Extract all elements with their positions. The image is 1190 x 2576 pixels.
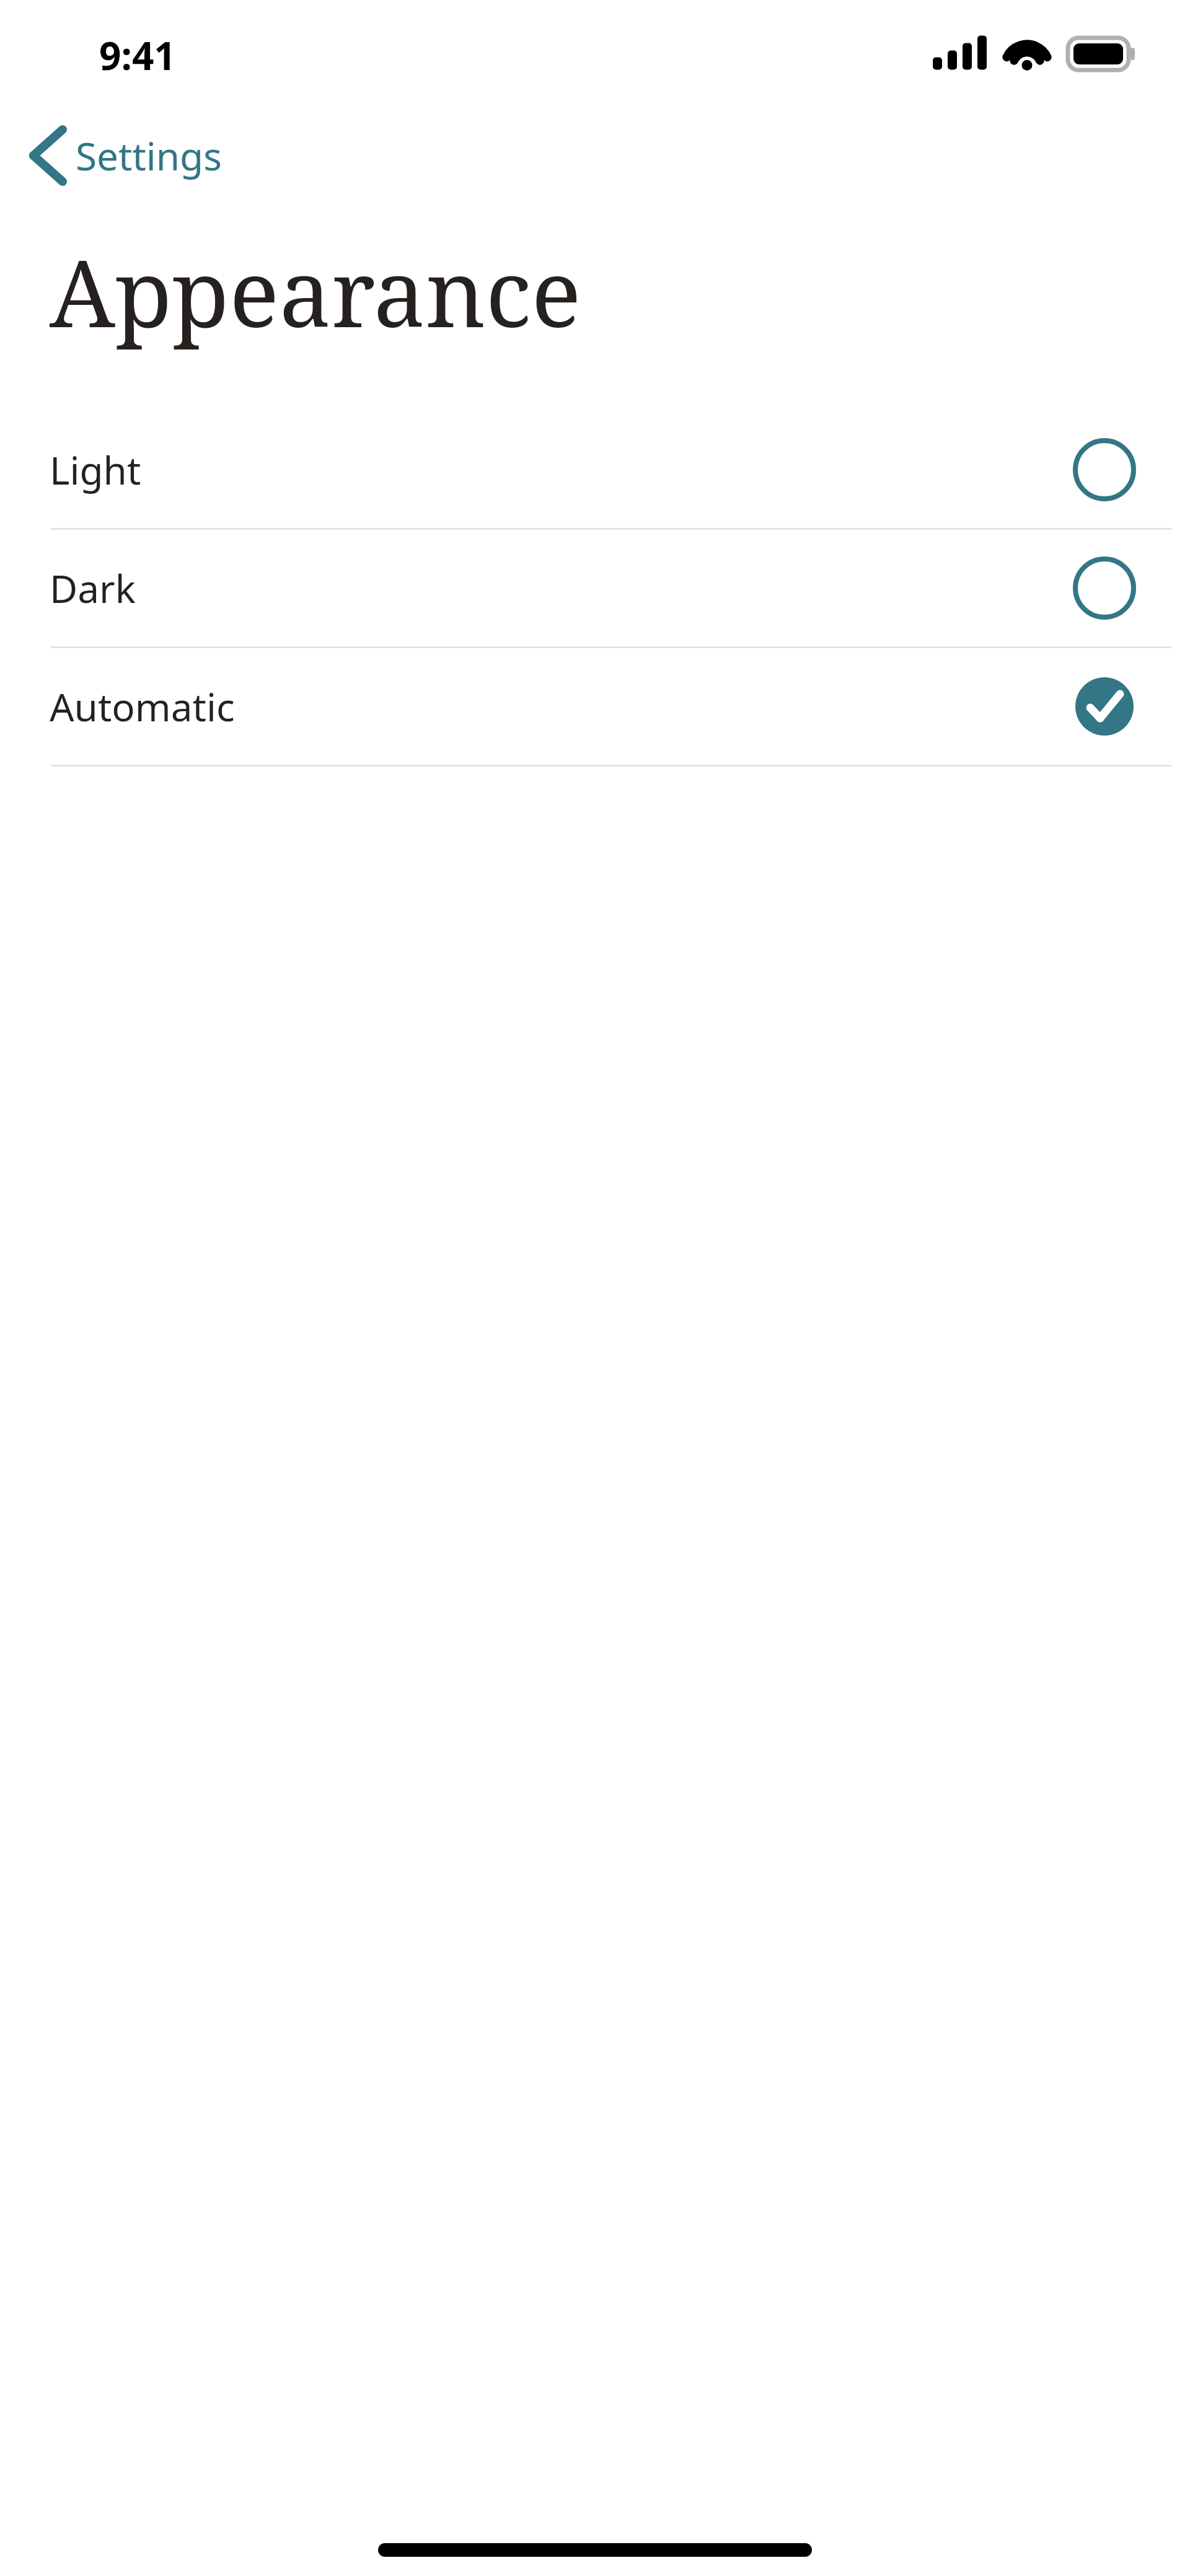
staticText: Dark (50, 562, 1073, 614)
button[interactable]: Back (0, 119, 1190, 192)
staticText: Settings (76, 130, 222, 182)
other: Not selected (1073, 557, 1135, 619)
button[interactable]: Dark (0, 530, 1190, 646)
other: Back (27, 125, 66, 187)
other: Selected (1073, 675, 1135, 737)
button[interactable]: Light (0, 411, 1190, 528)
staticText: Light (50, 444, 1073, 496)
other: Not selected (1073, 439, 1135, 501)
staticText: Appearance (50, 228, 581, 354)
staticText: 9:41 (99, 29, 176, 81)
button[interactable]: Automatic (0, 648, 1190, 765)
staticText: Automatic (50, 680, 1073, 732)
